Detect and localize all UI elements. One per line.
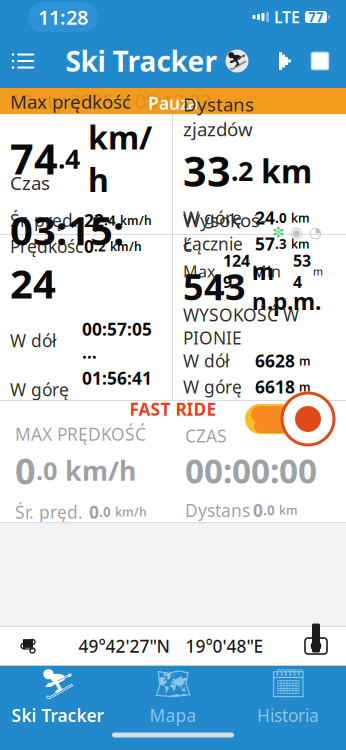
staticText: FAST RIDE: [129, 398, 216, 421]
staticText: 0: [253, 499, 263, 522]
staticText: Czas: [10, 170, 50, 195]
staticText: Mapa: [149, 704, 196, 727]
staticText: Min: [252, 261, 281, 282]
staticText: 13: [255, 401, 275, 424]
button[interactable]: Record: [228, 389, 338, 449]
staticText: 0: [89, 500, 99, 523]
staticText: ⛷: [226, 51, 248, 71]
staticText: 6618: [255, 375, 295, 398]
staticText: .2: [231, 153, 253, 188]
staticText: km/h: [110, 238, 142, 254]
staticText: 03:15:24: [10, 203, 124, 309]
staticText: 49°42'27"N: [78, 634, 169, 657]
staticText: ✼: [272, 224, 284, 241]
button[interactable]: Share: [0, 627, 56, 665]
staticText: 543: [183, 262, 246, 310]
staticText: CZAS: [185, 424, 227, 447]
button[interactable]: Camera: [286, 627, 346, 665]
staticText: W górę: [183, 206, 242, 229]
staticText: .4: [58, 141, 80, 176]
staticText: 6628: [255, 349, 295, 372]
staticText: Odpocz…: [10, 415, 72, 461]
staticText: ◉: [290, 224, 303, 241]
staticText: Max prędkość: [10, 89, 131, 114]
staticText: 77: [308, 8, 324, 26]
staticText: 0: [84, 235, 94, 258]
button[interactable]: 🗺: [115, 666, 230, 728]
staticText: LTE: [274, 6, 300, 28]
staticText: W dół: [10, 329, 56, 352]
staticText: Śr. pręd.: [10, 209, 78, 232]
staticText: m: [299, 353, 311, 369]
staticText: 57: [255, 232, 275, 255]
staticText: Wysokość: [183, 208, 266, 257]
staticText: Łącznie: [183, 401, 243, 424]
staticText: km/h: [65, 453, 136, 488]
staticText: Dystans zjazdów: [183, 92, 254, 141]
staticText: 01:56:41…: [82, 366, 152, 412]
staticText: km: [291, 210, 310, 226]
staticText: WYSOKOŚĆ W PIONIE: [183, 303, 299, 349]
staticText: 00:57:05…: [82, 317, 152, 363]
staticText: .0: [99, 503, 111, 521]
staticText: 🗺: [154, 667, 191, 701]
staticText: ⛷: [39, 667, 76, 701]
staticText: 18 sty 2025 o 08:13:23: [10, 88, 211, 114]
button[interactable]: Menu: [0, 36, 46, 86]
staticText: Max: [183, 261, 215, 282]
staticText: Śr. pręd.: [15, 500, 83, 523]
staticText: W dół: [183, 349, 229, 372]
staticText: 22: [84, 209, 104, 232]
staticText: 534: [293, 250, 311, 292]
staticText: km: [291, 405, 310, 421]
staticText: Historia: [257, 704, 319, 727]
staticText: Dystans: [185, 499, 250, 522]
staticText: 74: [10, 131, 58, 186]
staticText: 24: [255, 206, 275, 229]
staticText: Ski Tracker: [11, 704, 104, 727]
button[interactable]: ⛷: [0, 666, 115, 728]
staticText: km: [279, 502, 298, 518]
staticText: m n.p.m.: [252, 256, 321, 316]
staticText: .0: [36, 454, 57, 487]
staticText: MAX PRĘDKOŚĆ: [15, 423, 146, 446]
staticText: .2: [275, 404, 287, 422]
staticText: W górę: [183, 375, 242, 398]
staticText: km/h: [88, 116, 152, 201]
staticText: km/h: [120, 212, 152, 228]
staticText: Prędkość: [10, 235, 83, 258]
staticText: km: [291, 236, 310, 252]
staticText: 🗓: [269, 667, 306, 701]
staticText: km/h: [115, 504, 147, 520]
staticText: Ski Tracker: [65, 42, 217, 80]
staticText: .2: [94, 237, 106, 255]
staticText: 11:28: [38, 4, 88, 30]
staticText: 33: [183, 143, 231, 198]
button[interactable]: Stop: [302, 36, 338, 86]
button[interactable]: Start: [268, 36, 302, 86]
staticText: .0: [275, 209, 287, 227]
staticText: Pauza: [148, 91, 198, 114]
staticText: m: [313, 264, 323, 278]
staticText: 00:00:00: [185, 448, 317, 493]
staticText: km: [261, 149, 312, 192]
staticText: 00:21:37: [82, 427, 152, 450]
staticText: m: [299, 379, 311, 395]
staticText: 1249: [223, 250, 250, 292]
staticText: .4: [104, 211, 116, 229]
staticText: W górę: [10, 378, 69, 401]
staticText: .3: [275, 235, 287, 253]
staticText: 0: [15, 447, 36, 494]
staticText: .0: [263, 501, 275, 519]
staticText: Łącznie: [183, 232, 243, 255]
button[interactable]: 🗓: [230, 666, 345, 728]
staticText: 19°0'48"E: [185, 634, 263, 657]
staticText: ◔: [309, 224, 322, 241]
